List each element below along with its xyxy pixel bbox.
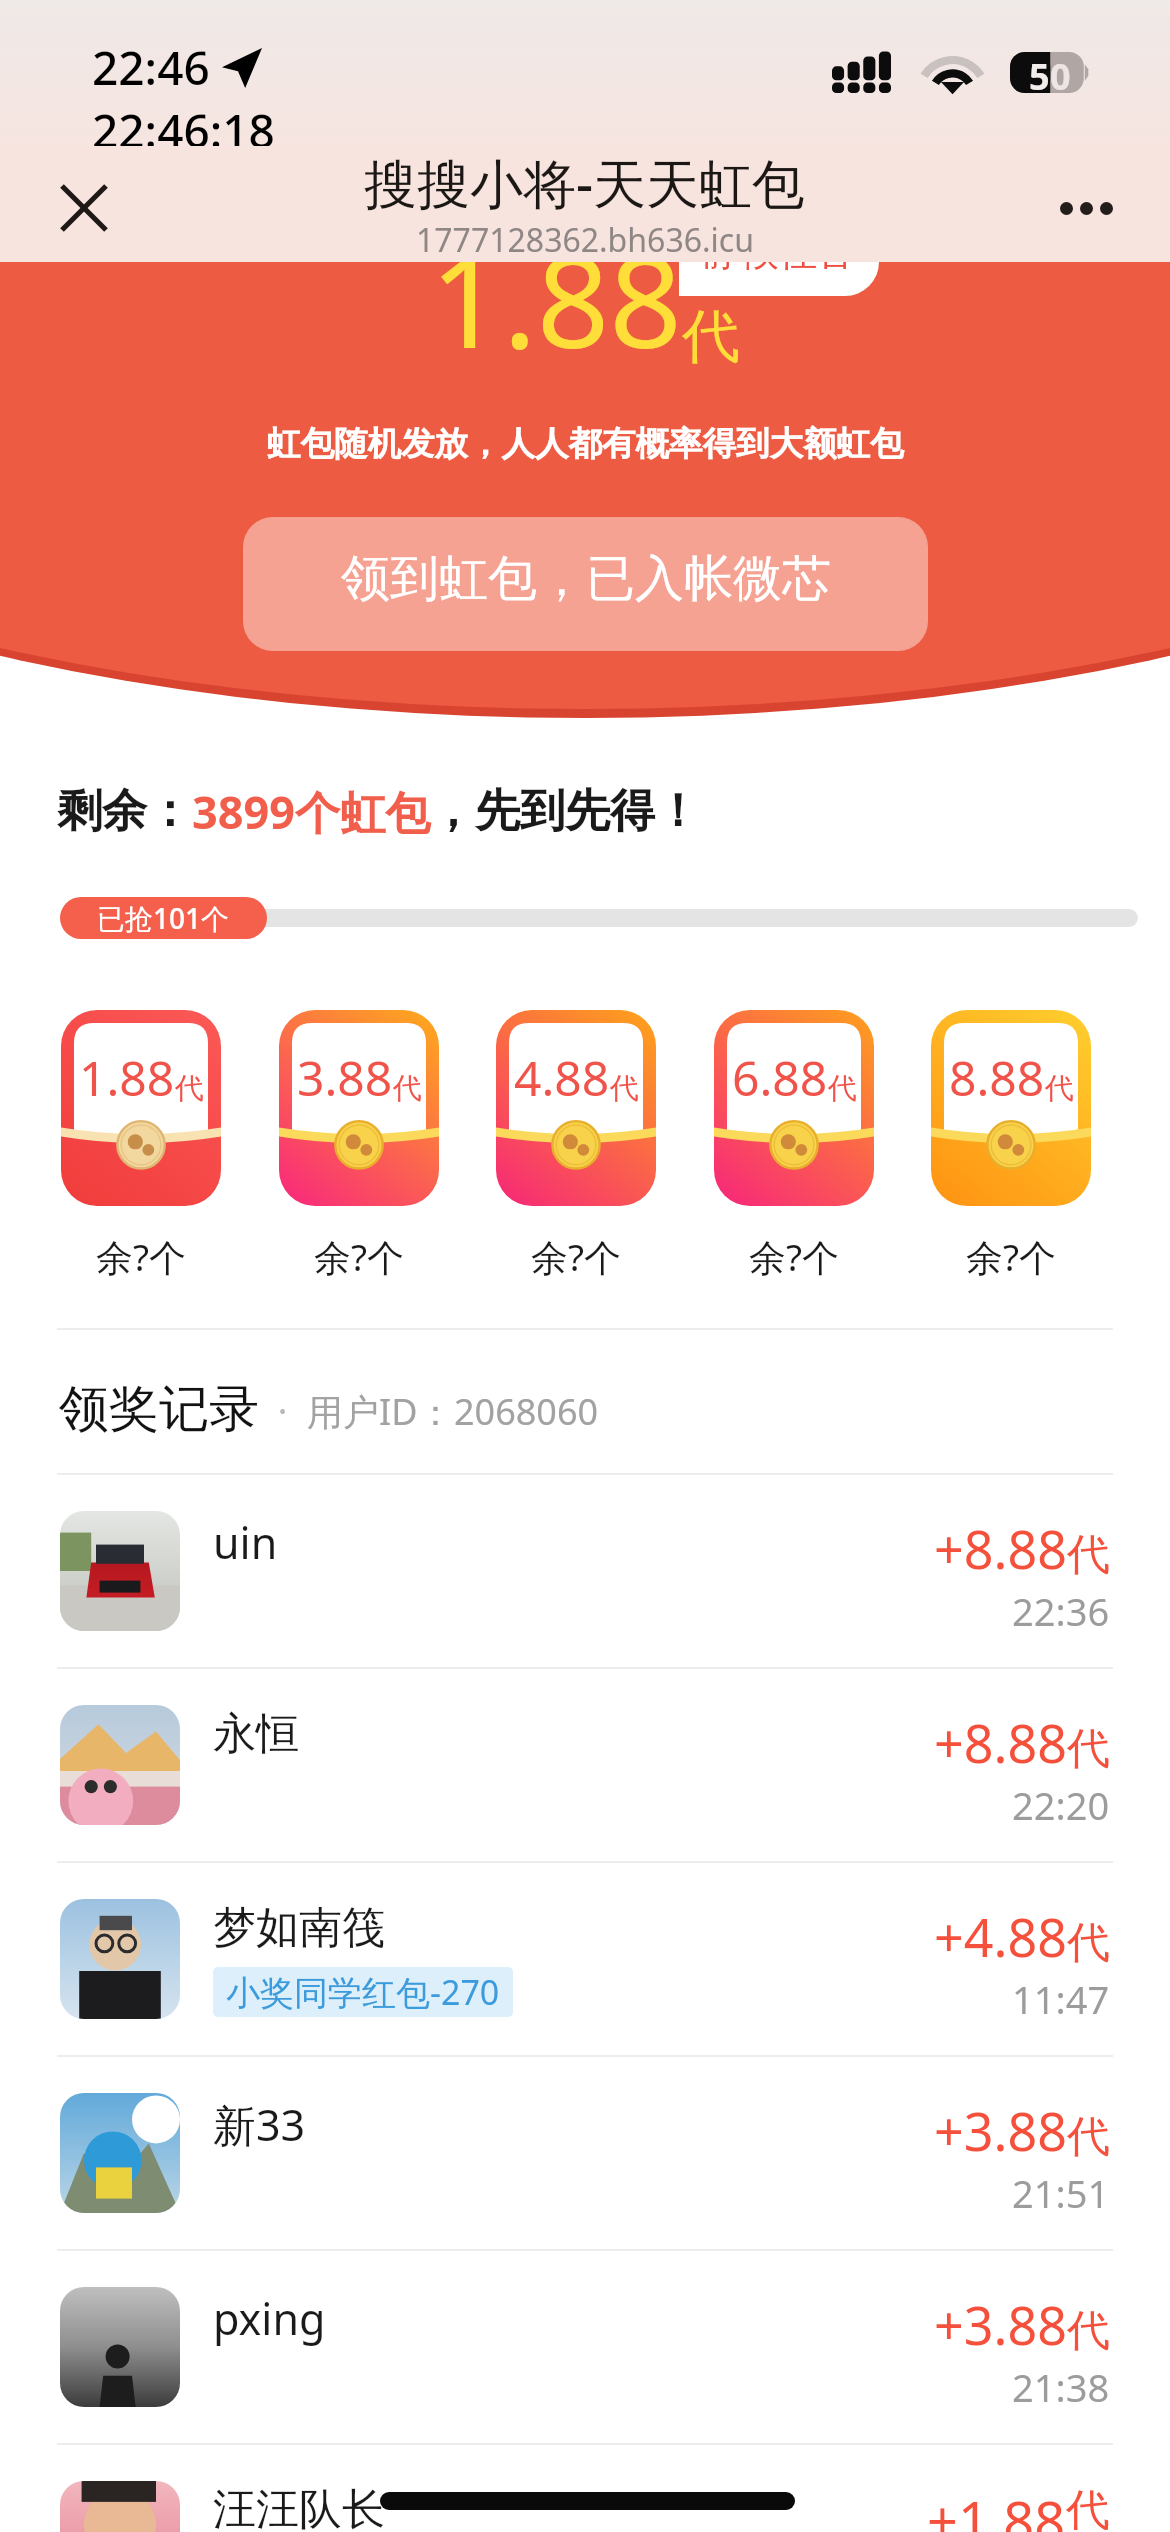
- button[interactable]: 领到虹包，已入帐微芯: [243, 517, 928, 651]
- staticText: 4.88: [514, 1045, 610, 1110]
- staticText: 代: [610, 1070, 639, 1107]
- staticText: 2068060: [454, 1387, 599, 1436]
- staticText: 22:46: [92, 36, 210, 99]
- staticText: +4.88: [934, 1901, 1067, 1972]
- staticText: +8.88: [934, 1513, 1067, 1584]
- staticText: 代: [1067, 1528, 1110, 1582]
- staticText: 22:36: [1012, 1585, 1110, 1637]
- staticText: 6.88: [732, 1045, 828, 1110]
- staticText: 3.88: [297, 1045, 393, 1110]
- staticText: 汪汪队长: [213, 2483, 385, 2532]
- button[interactable]: 永恒: [0, 1669, 1170, 1861]
- staticText: 1777128362.bh636.icu: [416, 218, 754, 262]
- staticText: 领奖记录: [59, 1378, 259, 1441]
- button[interactable]: 8.88: [931, 1010, 1091, 1282]
- staticText: 代: [1045, 1070, 1074, 1107]
- staticText: 0: [1050, 52, 1071, 93]
- staticText: 用户ID：: [307, 1387, 454, 1436]
- button[interactable]: More options: [1022, 150, 1150, 266]
- staticText: 代: [1067, 1722, 1110, 1776]
- staticText: 小奖同学红包-270: [226, 1969, 500, 2015]
- staticText: 余?个: [531, 1231, 622, 1282]
- staticText: pxing: [213, 2289, 326, 2348]
- staticText: 新33: [213, 2095, 306, 2154]
- staticText: 1.88: [430, 212, 682, 385]
- staticText: 1.88: [79, 1045, 175, 1110]
- staticText: 梦如南筏: [213, 1901, 385, 1955]
- staticText: 22:46:18: [92, 99, 275, 146]
- staticText: +8.88: [934, 1707, 1067, 1778]
- staticText: 21:51: [1012, 2167, 1110, 2219]
- staticText: 余?个: [314, 1231, 405, 1282]
- staticText: uin: [213, 1513, 278, 1572]
- staticText: 永恒: [213, 1707, 299, 1761]
- staticText: 21:38: [1012, 2361, 1110, 2413]
- button[interactable]: 汪汪队长: [0, 2445, 1170, 2532]
- staticText: 3899个虹包: [192, 781, 430, 842]
- button[interactable]: uin: [0, 1475, 1170, 1667]
- button[interactable]: 6.88: [714, 1010, 874, 1282]
- staticText: 代: [1067, 1916, 1110, 1970]
- staticText: 余?个: [749, 1231, 840, 1282]
- staticText: 领到虹包，已入帐微芯: [341, 548, 831, 610]
- staticText: 搜搜小将-天天虹包: [364, 146, 806, 218]
- staticText: 代: [1067, 2110, 1110, 2164]
- staticText: 已抢101个: [97, 899, 230, 937]
- staticText: 余?个: [96, 1231, 187, 1282]
- staticText: 代: [828, 1070, 857, 1107]
- button[interactable]: 3.88: [279, 1010, 439, 1282]
- button[interactable]: 新33: [0, 2057, 1170, 2249]
- staticText: ，先到先得！: [430, 783, 700, 840]
- staticText: 剩余：: [57, 783, 192, 840]
- staticText: 5: [1029, 52, 1050, 93]
- staticText: 代: [175, 1070, 204, 1107]
- staticText: 11:47: [1012, 1973, 1110, 2025]
- button[interactable]: 梦如南筏: [0, 1863, 1170, 2055]
- staticText: 代: [393, 1070, 422, 1107]
- button[interactable]: 4.88: [496, 1010, 656, 1282]
- staticText: 代: [1066, 2483, 1110, 2530]
- staticText: ·: [259, 1386, 307, 1435]
- staticText: +3.88: [934, 2095, 1067, 2166]
- staticText: +1.88: [927, 2483, 1066, 2532]
- staticText: 虹包随机发放，人人都有概率得到大额虹包: [267, 423, 904, 465]
- staticText: 22:20: [1012, 1779, 1110, 1831]
- staticText: 8.88: [949, 1045, 1045, 1110]
- button[interactable]: 1.88: [61, 1010, 221, 1282]
- staticText: +3.88: [934, 2289, 1067, 2360]
- button[interactable]: pxing: [0, 2251, 1170, 2443]
- staticText: 代: [682, 300, 740, 373]
- staticText: 余?个: [966, 1231, 1057, 1282]
- staticText: 静候佳音: [703, 228, 855, 276]
- staticText: 代: [1067, 2304, 1110, 2358]
- button[interactable]: Close: [20, 150, 148, 266]
